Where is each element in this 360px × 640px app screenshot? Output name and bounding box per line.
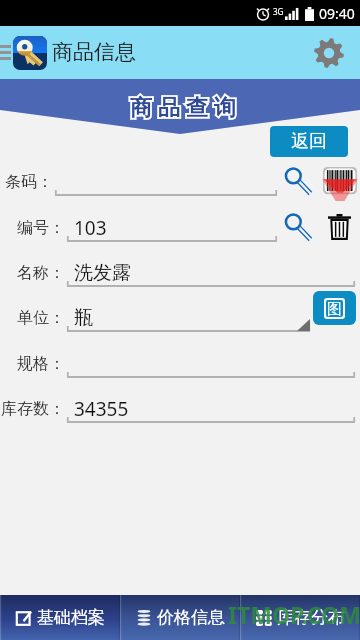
button[interactable]: 价格信息	[120, 595, 240, 640]
button[interactable]: Search	[285, 168, 311, 194]
staticText: 3G	[273, 6, 284, 17]
button[interactable]: 规格：	[0, 349, 360, 383]
staticText: 34355	[74, 396, 129, 422]
staticText: 规格：	[0, 354, 65, 374]
staticText: 商品查询	[127, 94, 239, 122]
staticText: 商品信息	[52, 39, 136, 65]
staticText: 图	[327, 300, 342, 317]
staticText: 名称：	[0, 263, 65, 283]
staticText: 库存数：	[0, 399, 65, 419]
button[interactable]: 库存数：	[0, 394, 360, 428]
button[interactable]: Menu	[0, 45, 11, 60]
staticText: 瓶	[74, 306, 93, 330]
button[interactable]: 返回	[270, 126, 348, 157]
button[interactable]: Image	[313, 291, 356, 325]
button[interactable]: Scan barcode	[323, 167, 357, 201]
staticText: 编号：	[0, 218, 65, 238]
button[interactable]: 基础档案	[0, 595, 120, 640]
staticText: 单位：	[0, 308, 65, 328]
staticText: 价格信息	[157, 607, 225, 628]
staticText: ITMOP.COM	[228, 599, 360, 630]
staticText: 条码：	[0, 172, 53, 192]
button[interactable]: 编号：	[0, 213, 360, 247]
staticText: 基础档案	[37, 607, 105, 628]
staticText: 09:40	[319, 4, 355, 23]
staticText: 103	[74, 215, 107, 241]
button[interactable]: 名称：	[0, 258, 360, 292]
button[interactable]: 库存分布	[240, 595, 360, 640]
staticText: 商品查询	[127, 94, 239, 122]
button[interactable]: Product icon	[13, 36, 47, 70]
button[interactable]: Delete	[328, 214, 351, 240]
button[interactable]: 单位：	[0, 303, 360, 337]
staticText: 洗发露	[74, 261, 131, 285]
button[interactable]: Search	[285, 214, 311, 240]
staticText: 返回	[291, 130, 327, 153]
button[interactable]: Settings	[313, 37, 345, 69]
button[interactable]: 条码：	[0, 167, 360, 201]
staticText: 库存分布	[277, 607, 345, 628]
